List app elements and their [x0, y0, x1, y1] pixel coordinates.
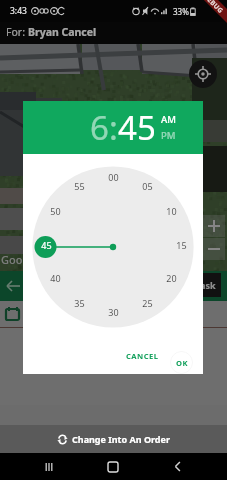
button[interactable]: 55	[68, 179, 90, 192]
button[interactable]: 15	[170, 238, 192, 251]
button[interactable]: Back	[2, 275, 24, 297]
staticText: OK	[176, 358, 188, 368]
staticText: AM	[161, 113, 176, 126]
staticText: 45	[41, 239, 52, 251]
staticText: CANCEL	[126, 351, 159, 361]
staticText: 25	[142, 297, 153, 309]
staticText: 40	[50, 272, 61, 284]
button[interactable]: 05	[136, 179, 158, 192]
staticText: Bryan Cancel	[28, 25, 97, 39]
staticText: 35	[74, 297, 85, 309]
staticText: 55	[74, 180, 85, 192]
button[interactable]: 45	[118, 105, 156, 150]
button[interactable]: 20	[160, 271, 182, 284]
staticText: Goog	[1, 252, 30, 267]
button[interactable]: 6	[90, 105, 118, 150]
staticText: 10	[166, 205, 177, 217]
button[interactable]: 30	[102, 305, 124, 318]
button[interactable]: Zoom in	[203, 215, 225, 237]
button[interactable]: Calendar	[5, 306, 21, 322]
staticText: 05	[142, 180, 153, 192]
staticText: ask	[200, 279, 216, 291]
staticText: 20	[166, 272, 177, 284]
button[interactable]: OK	[164, 346, 199, 379]
staticText: For:	[6, 25, 28, 39]
staticText: 15	[176, 239, 187, 251]
button[interactable]: Home	[75, 453, 151, 480]
button[interactable]: 10	[160, 204, 182, 217]
button[interactable]: 50	[44, 204, 66, 217]
button[interactable]: 00	[102, 170, 124, 183]
staticText: 3:43	[10, 5, 27, 17]
staticText: DEBUG	[202, 0, 225, 15]
button[interactable]: PM	[161, 129, 176, 142]
staticText: 00	[108, 171, 119, 183]
button[interactable]: 45	[35, 238, 57, 251]
staticText: Change Into An Order	[72, 433, 170, 445]
button[interactable]: Recent apps	[0, 453, 75, 480]
button[interactable]: Zoom out	[203, 238, 225, 260]
button[interactable]: 40	[44, 271, 66, 284]
staticText: 33%	[173, 6, 189, 17]
staticText: 6	[90, 105, 109, 150]
staticText: 50	[50, 205, 61, 217]
button[interactable]: AM	[161, 113, 176, 126]
staticText: 30	[108, 306, 119, 318]
button[interactable]: My location	[189, 60, 217, 88]
button[interactable]: Back	[151, 453, 227, 480]
button[interactable]: 35	[68, 296, 90, 309]
staticText: :	[109, 105, 118, 150]
button[interactable]: Change Into An Order	[0, 425, 227, 453]
button[interactable]: 25	[136, 296, 158, 309]
button[interactable]: CANCEL	[120, 346, 165, 366]
staticText: PM	[161, 129, 176, 142]
